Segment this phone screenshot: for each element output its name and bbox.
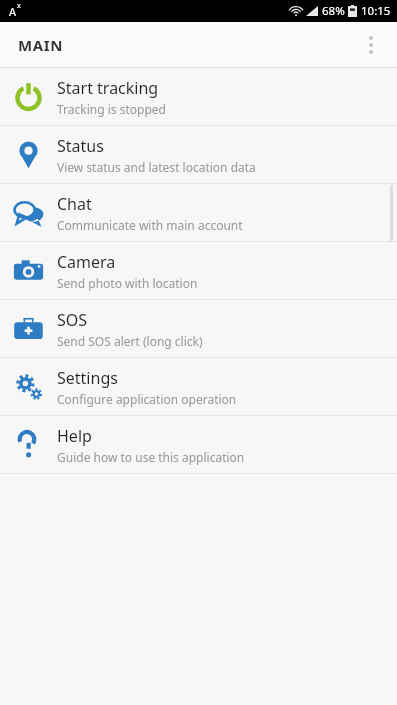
button[interactable]: Chat: [0, 184, 397, 241]
staticText: SOS: [57, 309, 88, 331]
staticText: Camera: [57, 251, 116, 273]
button[interactable]: Start tracking: [0, 68, 397, 125]
button[interactable]: Status: [0, 126, 397, 183]
button[interactable]: More options: [351, 25, 391, 65]
staticText: MAIN: [18, 35, 63, 55]
button[interactable]: SOS: [0, 300, 397, 357]
staticText: Status: [57, 135, 104, 157]
staticText: View status and latest location data: [57, 159, 256, 175]
staticText: Configure application operation: [57, 391, 237, 407]
staticText: x: [17, 1, 21, 11]
staticText: Start tracking: [57, 77, 159, 99]
staticText: Settings: [57, 367, 118, 389]
staticText: Communicate with main account: [57, 217, 243, 233]
staticText: Chat: [57, 193, 92, 215]
staticText: Guide how to use this application: [57, 449, 245, 465]
staticText: Send photo with location: [57, 275, 198, 291]
staticText: 10:15: [361, 3, 391, 19]
staticText: Tracking is stopped: [57, 101, 166, 117]
staticText: A: [9, 4, 17, 19]
button[interactable]: Help: [0, 416, 397, 473]
staticText: Send SOS alert (long click): [57, 333, 203, 349]
staticText: 68%: [322, 3, 345, 19]
button[interactable]: Settings: [0, 358, 397, 415]
staticText: Help: [57, 425, 92, 447]
button[interactable]: Camera: [0, 242, 397, 299]
